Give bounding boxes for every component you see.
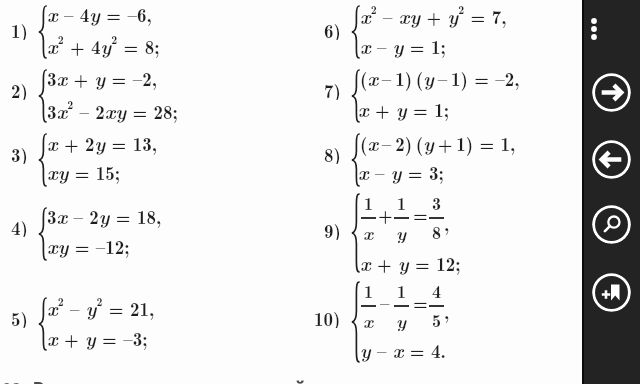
button[interactable]: 9)	[295, 216, 341, 240]
staticText: 3x2 – 2xy = 28;	[47, 95, 178, 125]
staticText: –	[380, 288, 390, 312]
staticText: x2 + 4y2 = 8;	[47, 30, 160, 60]
staticText: x + y = –3;	[47, 324, 148, 352]
staticText: ,	[444, 209, 450, 236]
staticText: (x – 1) (y – 1) = –2,	[360, 64, 520, 92]
button[interactable]: Next page	[592, 73, 631, 112]
staticText: 5	[432, 307, 441, 331]
staticText: 8)	[324, 140, 341, 164]
staticText: 3)	[11, 140, 28, 164]
button[interactable]: 1)	[0, 16, 28, 40]
staticText: 1	[364, 278, 373, 302]
staticText: 2)	[11, 76, 28, 100]
staticText: 3x – 2y = 18,	[47, 202, 162, 230]
button[interactable]: 7)	[295, 76, 341, 100]
button[interactable]: 5)	[0, 304, 28, 328]
staticText: 3x + y = –2,	[47, 64, 157, 92]
staticText: x2 – y2 = 21,	[47, 292, 155, 322]
staticText: 1)	[11, 16, 28, 40]
staticText: x – 4y = –6,	[47, 0, 152, 28]
staticText: =	[413, 288, 428, 312]
staticText: 8	[432, 219, 441, 243]
staticText: =	[413, 200, 428, 224]
staticText: +	[378, 200, 393, 224]
button[interactable]: Add bookmark	[592, 273, 631, 312]
staticText: 4	[432, 278, 441, 302]
staticText: x + y = 12;	[360, 249, 461, 277]
button[interactable]: 8)	[295, 140, 341, 164]
button[interactable]: 10)	[295, 304, 341, 328]
staticText: x2 – xy + y2 = 7,	[360, 0, 507, 30]
staticText: 6)	[324, 16, 341, 40]
button[interactable]: Previous page	[592, 140, 631, 179]
button[interactable]: More options	[586, 13, 603, 45]
button[interactable]: 4)	[0, 213, 28, 237]
staticText: y – x = 4.	[360, 336, 446, 364]
staticText: (x – 2) (y + 1) = 1,	[360, 129, 516, 157]
staticText: 1	[397, 278, 406, 302]
staticText: x	[363, 219, 374, 243]
staticText: y	[396, 307, 407, 331]
staticText: 9)	[324, 216, 341, 240]
staticText: x + 2y = 13,	[47, 129, 157, 157]
staticText: 5)	[11, 304, 28, 328]
staticText: y	[396, 219, 407, 243]
staticText: 93. Решите систему уравнений	[2, 374, 307, 384]
staticText: x – y = 1;	[360, 32, 446, 60]
staticText: x	[363, 307, 374, 331]
button[interactable]: Search	[592, 205, 631, 244]
staticText: xy = 15;	[47, 158, 121, 186]
staticText: xy = –12;	[47, 232, 130, 260]
staticText: 10)	[314, 304, 341, 328]
staticText: x + y = 1;	[358, 95, 449, 123]
staticText: 4)	[11, 213, 28, 237]
staticText: x – y = 3;	[358, 158, 444, 186]
staticText: 7)	[324, 76, 341, 100]
button[interactable]: 3)	[0, 140, 28, 164]
staticText: 3	[432, 190, 441, 214]
staticText: ,	[444, 297, 450, 324]
staticText: 1	[364, 190, 373, 214]
button[interactable]: 6)	[295, 16, 341, 40]
staticText: 1	[397, 190, 406, 214]
button[interactable]: 2)	[0, 76, 28, 100]
